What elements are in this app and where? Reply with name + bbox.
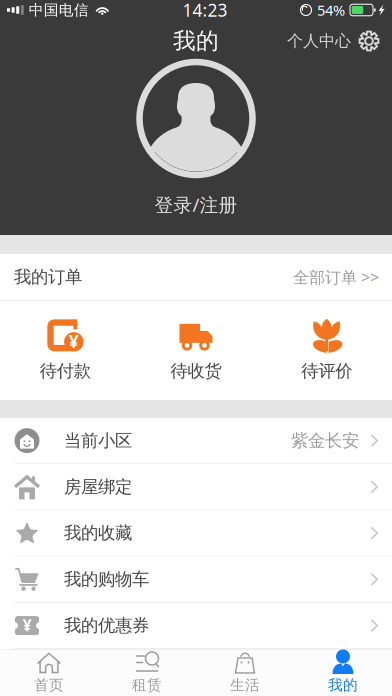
button[interactable]: 我的购物车 bbox=[0, 557, 392, 603]
staticText: 中国电信 bbox=[29, 1, 89, 19]
button[interactable]: 我的收藏 bbox=[0, 510, 392, 557]
staticText: 登录/注册 bbox=[154, 192, 237, 217]
button[interactable]: 房屋绑定 bbox=[0, 464, 392, 510]
button[interactable]: 我的 bbox=[294, 647, 392, 696]
staticText: 首页 bbox=[34, 676, 64, 694]
staticText: 我的收藏 bbox=[64, 522, 132, 544]
button[interactable]: ¥ bbox=[0, 603, 392, 649]
staticText: 我的 bbox=[328, 676, 358, 694]
staticText: 我的优惠券 bbox=[64, 615, 149, 636]
staticText: 生活 bbox=[230, 676, 260, 694]
button[interactable]: ¥ bbox=[0, 319, 131, 382]
button[interactable]: 生活 bbox=[196, 647, 294, 696]
button[interactable]: 租赁 bbox=[98, 647, 196, 696]
staticText: 我的订单 bbox=[14, 266, 82, 288]
staticText: 待收货 bbox=[170, 360, 221, 382]
staticText: 待付款 bbox=[40, 360, 91, 382]
staticText: 待评价 bbox=[301, 360, 352, 382]
button[interactable]: 待收货 bbox=[131, 319, 261, 382]
button[interactable]: 个人中心 bbox=[287, 26, 380, 56]
staticText: 14:23 bbox=[182, 0, 227, 21]
staticText: 我的购物车 bbox=[64, 569, 149, 590]
staticText: 紫金长安 bbox=[291, 430, 359, 451]
staticText: 当前小区 bbox=[64, 430, 132, 451]
staticText: ¥ bbox=[22, 614, 31, 636]
button[interactable]: 当前小区 bbox=[0, 418, 392, 464]
staticText: 54% bbox=[317, 0, 345, 20]
staticText: 租赁 bbox=[132, 676, 162, 694]
button[interactable]: 全部订单 >> bbox=[293, 266, 379, 288]
button[interactable]: 首页 bbox=[0, 647, 98, 696]
staticText: 全部订单 >> bbox=[293, 266, 379, 288]
staticText: 个人中心 bbox=[287, 31, 351, 51]
button[interactable]: 待评价 bbox=[261, 319, 392, 382]
staticText: 我的 bbox=[173, 27, 219, 55]
staticText: 房屋绑定 bbox=[64, 476, 132, 497]
staticText: ¥ bbox=[69, 330, 79, 353]
